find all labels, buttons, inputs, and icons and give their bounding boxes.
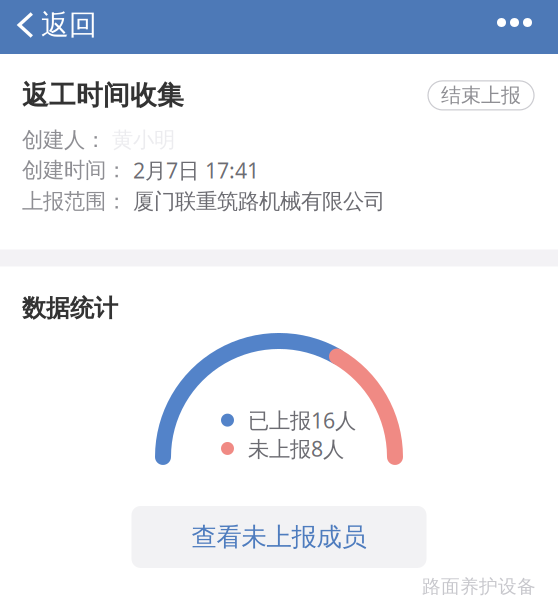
staticText: 结束上报 [441,83,521,108]
staticText: 已上报16人 [248,406,356,434]
staticText: 厦门联重筑路机械有限公司 [133,188,385,214]
staticText: 查看未上报成员 [191,521,366,552]
staticText: 创建人： [22,127,106,153]
staticText: 数据统计 [22,293,118,323]
button[interactable]: 结束上报 [428,81,534,110]
staticText: 返工时间收集 [22,79,184,112]
button[interactable]: 查看未上报成员 [131,506,426,568]
staticText: 上报范围： [22,188,127,214]
staticText: 未上报8人 [248,434,344,463]
staticText: 黄小明 [112,127,175,153]
button[interactable]: 返回 [0,0,109,54]
staticText: 路面养护设备 [422,575,536,598]
staticText: 返回 [41,8,97,42]
staticText: 创建时间： [22,157,127,183]
button[interactable]: More options [477,0,558,54]
staticText: 2月7日 17:41 [133,156,259,184]
